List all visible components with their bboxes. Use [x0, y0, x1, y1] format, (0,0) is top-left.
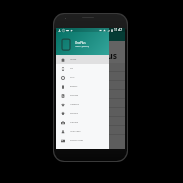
staticText: 11:47 — [114, 28, 123, 32]
staticText: Network — [70, 103, 79, 106]
staticText: System Apps — [70, 139, 84, 142]
button[interactable]: Storage — [56, 91, 109, 100]
staticText: Home — [70, 58, 77, 61]
button[interactable]: Battery — [56, 82, 109, 91]
button[interactable]: Network — [56, 100, 109, 109]
staticText: User Apps — [70, 130, 81, 133]
button[interactable]: User Apps — [56, 127, 109, 136]
button[interactable]: Sensors — [56, 109, 109, 118]
staticText: OnePlus — [75, 41, 86, 45]
staticText: Battery — [70, 85, 78, 88]
button[interactable]: System Apps — [56, 136, 109, 145]
staticText: CPU — [70, 76, 75, 79]
staticText: A0001 (bacon) — [75, 45, 89, 48]
staticText: Sensors — [70, 112, 79, 115]
button[interactable]: OnePlus — [56, 28, 109, 55]
staticText: Camera — [70, 121, 78, 124]
button[interactable]: Home — [56, 55, 109, 64]
button[interactable]: OS — [56, 64, 109, 73]
staticText: Storage — [70, 94, 78, 97]
button[interactable]: Camera — [56, 118, 109, 127]
button[interactable]: CPU — [56, 73, 109, 82]
staticText: OnePlus — [82, 50, 117, 62]
staticText: OS — [70, 67, 73, 70]
